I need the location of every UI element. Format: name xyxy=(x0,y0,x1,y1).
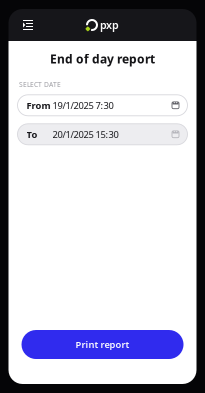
staticText: Print report xyxy=(75,338,129,351)
staticText: End of day report xyxy=(50,51,155,67)
button[interactable]: Menu xyxy=(17,14,39,36)
button[interactable]: Print report xyxy=(21,330,183,359)
staticText: SELECT DATE xyxy=(19,80,61,89)
staticText: pxp xyxy=(100,18,119,32)
staticText: 20/1/2025 15:30 xyxy=(52,128,118,140)
button[interactable]: To xyxy=(17,124,187,145)
button[interactable]: From xyxy=(17,95,187,116)
staticText: From xyxy=(26,99,50,111)
staticText: 19/1/2025 7:30 xyxy=(52,99,113,111)
staticText: To xyxy=(26,128,37,140)
